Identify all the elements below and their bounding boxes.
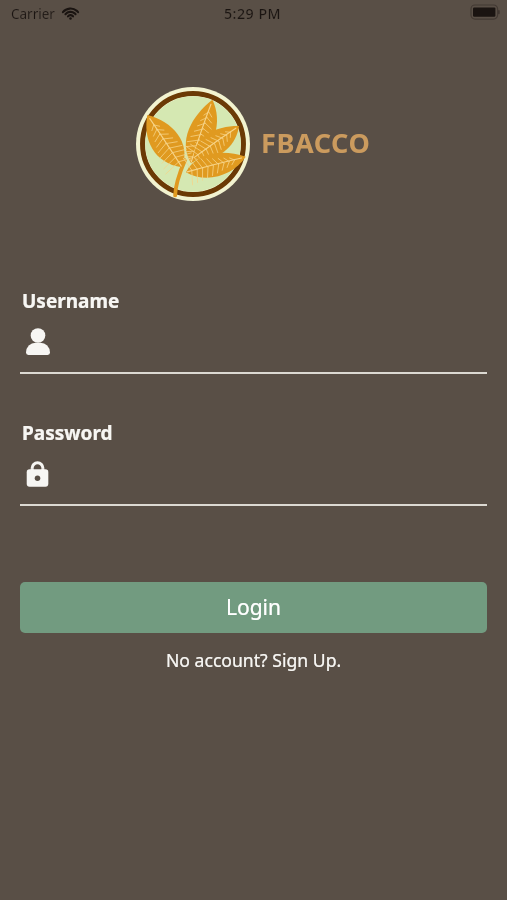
button[interactable]: No account? Sign Up. bbox=[160, 646, 348, 674]
button[interactable]: Login bbox=[20, 582, 487, 633]
staticText: 5:29 PM bbox=[224, 4, 282, 23]
staticText: FBACCO bbox=[261, 124, 371, 161]
staticText: Username bbox=[22, 288, 120, 314]
staticText: Password bbox=[22, 420, 113, 446]
button[interactable]: Password input field bbox=[20, 453, 487, 505]
button[interactable]: Username input field bbox=[20, 321, 487, 373]
staticText: Carrier bbox=[11, 5, 55, 23]
staticText: Login bbox=[226, 593, 282, 622]
